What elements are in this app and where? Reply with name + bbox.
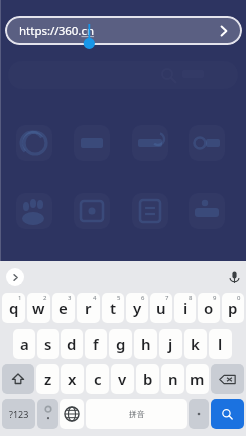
button[interactable]: https://360.cn [5,16,242,45]
staticText: s [44,334,52,354]
button[interactable]: Search [211,399,244,429]
staticText: 6 [141,294,145,302]
button[interactable]: Space [86,399,187,429]
button[interactable]: y [126,293,148,323]
staticText: k [191,334,200,354]
button[interactable]: m [186,364,209,394]
button[interactable]: v [111,364,134,394]
staticText: f [93,334,99,354]
staticText: b [143,369,153,389]
staticText: d [67,334,77,354]
staticText: w [32,298,45,318]
staticText: m [190,369,205,389]
button[interactable]: n [161,364,184,394]
staticText: 9 [213,294,217,302]
button[interactable]: p [222,293,244,323]
button[interactable]: Comma [37,399,58,429]
staticText: g [116,334,126,354]
button[interactable]: w [27,293,50,323]
staticText: j [168,334,173,354]
button[interactable]: g [109,329,132,359]
button[interactable]: c [86,364,109,394]
staticText: 5 [117,294,121,302]
staticText: u [156,298,166,318]
button[interactable]: Backspace [211,364,244,394]
button[interactable]: a [13,329,35,359]
staticText: p [228,298,238,318]
staticText: ?123 [9,408,29,420]
button[interactable]: t [102,293,124,323]
staticText: i [183,298,188,318]
staticText: https://360.cn [19,23,95,39]
staticText: 2 [43,294,47,302]
staticText: c [94,369,102,389]
staticText: 0 [237,294,241,302]
staticText: o [204,298,214,318]
staticText: a [20,334,29,354]
staticText: r [85,298,92,318]
button[interactable]: x [61,364,84,394]
staticText: e [59,298,68,318]
button[interactable]: s [37,329,59,359]
button[interactable]: i [174,293,196,323]
staticText: h [141,334,151,354]
button[interactable]: h [134,329,157,359]
staticText: v [118,369,127,389]
button[interactable]: z [36,364,59,394]
button[interactable]: Voice input [224,267,244,287]
button[interactable]: o [198,293,220,323]
staticText: q [9,298,19,318]
button[interactable]: e [52,293,75,323]
button[interactable]: b [136,364,159,394]
staticText: x [68,369,77,389]
staticText: y [133,298,142,318]
staticText: 拼音 [129,409,145,419]
staticText: 4 [93,294,97,302]
button[interactable]: Symbols [2,399,35,429]
button[interactable]: Expand toolbar [6,268,24,286]
button[interactable]: d [61,329,83,359]
button[interactable]: Period [189,399,209,429]
staticText: t [110,298,117,318]
staticText: 7 [165,294,169,302]
button[interactable]: r [77,293,100,323]
staticText: n [168,369,178,389]
button[interactable]: f [85,329,107,359]
staticText: z [44,369,52,389]
staticText: 8 [189,294,193,302]
staticText: 1 [18,294,22,302]
staticText: l [218,334,223,354]
button[interactable]: Shift [2,364,34,394]
button[interactable]: Change language [60,399,84,429]
button[interactable]: u [150,293,172,323]
button[interactable]: l [209,329,232,359]
button[interactable]: q [2,293,25,323]
button[interactable]: j [159,329,182,359]
button[interactable]: k [184,329,207,359]
other: Go [218,25,230,37]
staticText: 3 [68,294,72,302]
